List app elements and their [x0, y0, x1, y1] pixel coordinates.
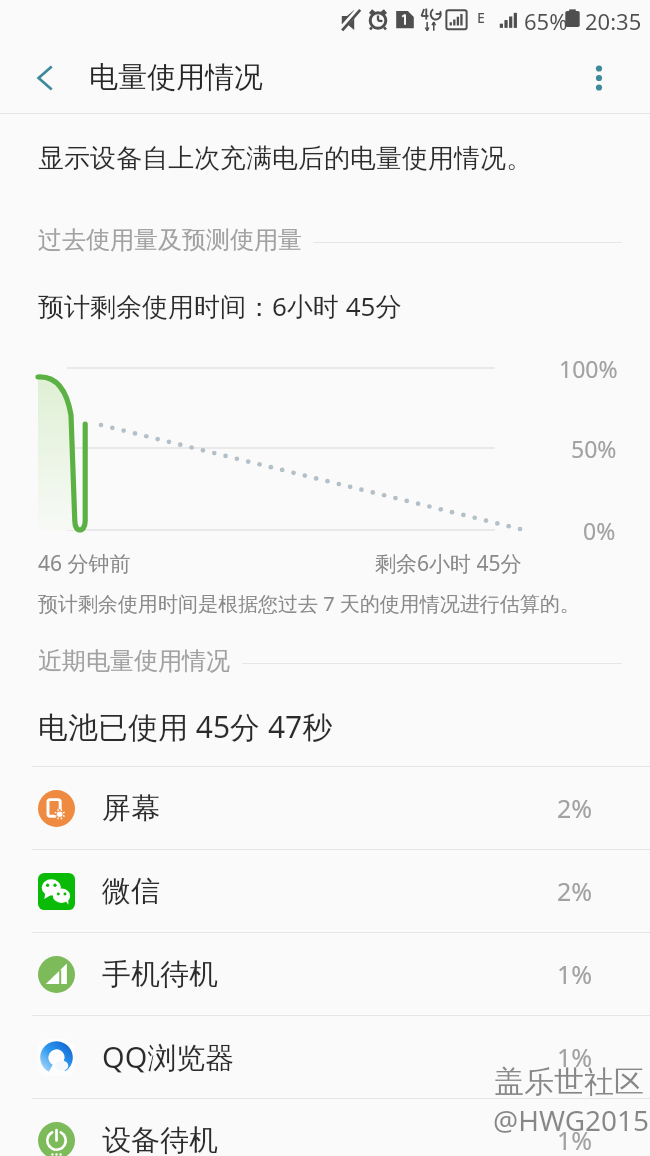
staticText: 过去使用量及预测使用量	[38, 225, 302, 255]
staticText: 2%	[557, 791, 593, 825]
staticText: 屏幕	[102, 790, 160, 827]
button[interactable]: More options	[568, 47, 630, 109]
staticText: 剩余6小时 45分	[375, 549, 522, 578]
staticText: 100%	[559, 353, 618, 384]
staticText: 65%	[524, 6, 568, 36]
button[interactable]: 设备待机	[0, 1099, 650, 1156]
staticText: 0%	[583, 515, 616, 546]
staticText: 盖乐世社区	[494, 1063, 644, 1101]
staticText: 预计剩余使用时间是根据您过去 7 天的使用情况进行估算的。	[38, 590, 580, 617]
button[interactable]: 屏幕	[0, 767, 650, 849]
staticText: 50%	[571, 433, 617, 464]
staticText: 设备待机	[102, 1122, 218, 1156]
staticText: 微信	[102, 873, 160, 910]
staticText: 手机待机	[102, 956, 218, 993]
staticText: 2%	[557, 874, 593, 908]
staticText: 预计剩余使用时间：6小时 45分	[38, 288, 402, 324]
staticText: 显示设备自上次充满电后的电量使用情况。	[38, 142, 532, 175]
staticText: 电量使用情况	[89, 59, 263, 96]
staticText: 20:35	[585, 6, 642, 36]
button[interactable]: QQ浏览器	[0, 1016, 650, 1098]
button[interactable]: 手机待机	[0, 933, 650, 1015]
staticText: 电池已使用 45分 47秒	[38, 706, 333, 747]
staticText: 1%	[557, 1040, 593, 1074]
staticText: QQ浏览器	[102, 1037, 235, 1077]
staticText: 近期电量使用情况	[38, 646, 230, 676]
staticText: 1%	[557, 1123, 593, 1156]
staticText: 1%	[557, 957, 593, 991]
staticText: 46 分钟前	[38, 549, 131, 578]
staticText: @HWG2015	[493, 1101, 650, 1139]
button[interactable]: Back	[14, 47, 76, 109]
staticText: E	[477, 8, 485, 27]
button[interactable]: 微信	[0, 850, 650, 932]
